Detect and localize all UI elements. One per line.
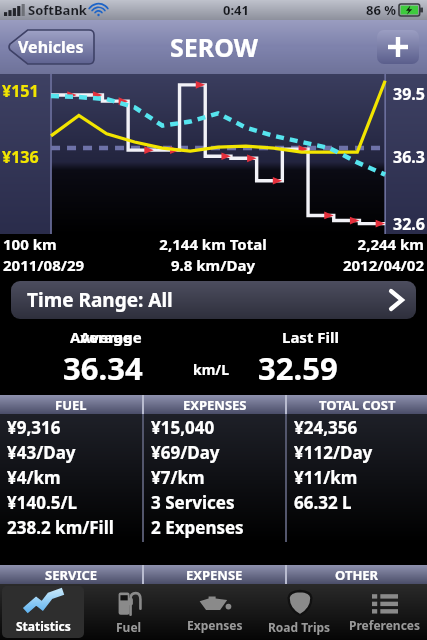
staticText: 9.8 km/Day — [130, 255, 296, 275]
staticText: SoftBank — [28, 1, 87, 19]
button[interactable]: Vehicles — [8, 30, 94, 64]
staticText: ¥4/km — [7, 466, 61, 491]
staticText: 2012/04/02 — [296, 255, 424, 275]
button[interactable]: Road Trips — [259, 586, 340, 638]
staticText: Statistics — [16, 618, 71, 634]
staticText: 36.3 — [393, 146, 425, 168]
staticText: 238.2 km/Fill — [7, 516, 114, 541]
staticText: ¥69/Day — [151, 441, 220, 466]
staticText: 36.34 — [63, 347, 143, 389]
staticText: Road Trips — [268, 619, 331, 635]
staticText: ¥43/Day — [7, 441, 76, 466]
staticText: 2011/08/29 — [3, 255, 130, 275]
staticText: Time Range: All — [27, 287, 173, 313]
staticText: 100 km — [3, 234, 130, 254]
staticText: 32.59 — [258, 347, 338, 389]
button[interactable]: Time Range: All — [11, 281, 416, 319]
staticText: ¥136 — [2, 146, 39, 168]
staticText: ¥140.5/L — [7, 491, 77, 516]
staticText: SEROW — [170, 30, 258, 64]
staticText: km/L — [193, 360, 229, 379]
staticText: FUEL — [55, 396, 87, 414]
staticText: EXPENSES — [183, 396, 247, 414]
staticText: 66.32 L — [294, 491, 352, 516]
staticText: Preferences — [349, 617, 421, 633]
staticText: Expenses — [187, 617, 243, 633]
button[interactable]: Preferences — [344, 586, 425, 638]
staticText: TOTAL COST — [319, 396, 396, 414]
button[interactable]: Statistics — [2, 586, 84, 638]
button[interactable]: Fuel — [88, 586, 170, 638]
button[interactable]: Add — [377, 30, 419, 64]
staticText: 2,244 km — [296, 234, 424, 254]
staticText: SERVICE — [45, 566, 98, 584]
staticText: 86 % — [366, 1, 396, 19]
staticText: ¥15,040 — [151, 416, 215, 441]
staticText: ¥7/km — [151, 466, 205, 491]
staticText: ¥9,316 — [7, 416, 61, 441]
staticText: Fuel — [116, 619, 142, 635]
staticText: OTHER — [335, 566, 379, 584]
staticText: ¥151 — [2, 80, 39, 102]
staticText: Last Fill — [282, 327, 339, 347]
staticText: EXPENSE — [186, 566, 243, 584]
staticText: 3 Services — [151, 491, 235, 516]
staticText: Average — [70, 327, 132, 347]
staticText: ¥11/km — [294, 466, 358, 491]
staticText: ¥112/Day — [294, 441, 373, 466]
staticText: 0:41 — [223, 1, 249, 19]
staticText: Average — [80, 327, 142, 347]
staticText: Vehicles — [18, 36, 84, 58]
staticText: 2,144 km Total — [130, 234, 296, 254]
staticText: 39.5 — [393, 83, 425, 105]
button[interactable]: Expenses — [174, 586, 255, 638]
staticText: 32.6 — [393, 213, 425, 235]
staticText: ¥24,356 — [294, 416, 358, 441]
staticText: 2 Expenses — [151, 516, 244, 541]
